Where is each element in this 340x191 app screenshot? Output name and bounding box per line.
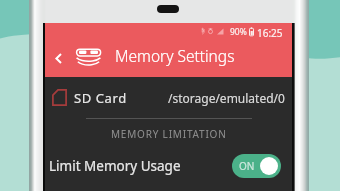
button[interactable]: SD Card [45,77,292,118]
staticText: 90% [230,26,247,37]
button[interactable]: ON [232,154,281,178]
button[interactable]: Back [49,44,67,72]
button[interactable]: Limit Memory Usage [45,147,292,185]
staticText: /storage/emulated/0 [168,90,285,106]
staticText: Memory Settings [115,45,235,66]
staticText: MEMORY LIMITATION [111,127,227,141]
staticText: 16:25 [257,26,283,37]
staticText: Limit Memory Usage [49,157,181,175]
staticText: ON [239,159,255,173]
staticText: SD Card [74,89,127,107]
